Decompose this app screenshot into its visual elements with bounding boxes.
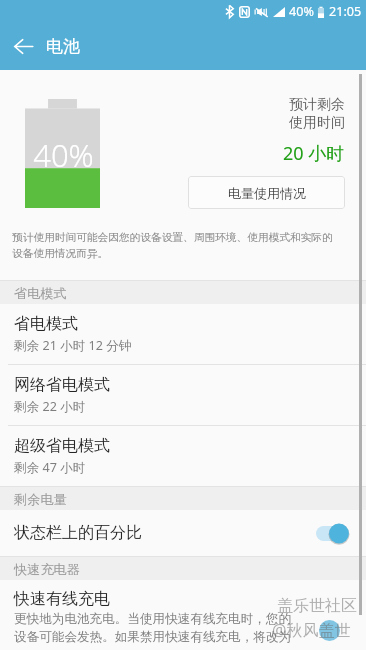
staticText: 剩余 22 小时	[14, 398, 86, 415]
button[interactable]: 超级省电模式	[0, 426, 366, 486]
staticText: 快速有线充电	[14, 589, 110, 609]
staticText: 快速充电器	[14, 561, 80, 578]
staticText: 超级省电模式	[14, 436, 110, 456]
staticText: 省电模式	[14, 285, 67, 302]
staticText: 网络省电模式	[14, 375, 110, 395]
staticText: 电量使用情况	[228, 185, 306, 201]
staticText: 剩余电量	[14, 491, 67, 508]
staticText: 电池	[46, 36, 80, 57]
staticText: 21:05	[329, 3, 362, 20]
button[interactable]: 省电模式	[0, 304, 366, 364]
staticText: 剩余 47 小时	[14, 459, 86, 476]
button[interactable]: 网络省电模式	[0, 365, 366, 425]
staticText: 盖乐世社区	[277, 596, 357, 616]
staticText: 剩余 21 小时 12 分钟	[14, 337, 132, 354]
staticText: 状态栏上的百分比	[14, 523, 142, 543]
staticText: @秋风盖世	[272, 619, 351, 641]
staticText: 更快地为电池充电。当使用快速有线充电时，您的 设备可能会发热。如果禁用快速有线充…	[14, 611, 292, 645]
staticText: 预计剩余	[289, 96, 345, 114]
staticText: 40%	[289, 3, 314, 20]
staticText: 省电模式	[14, 314, 78, 334]
button[interactable]: 电量使用情况	[188, 176, 345, 209]
staticText: 40%	[26, 134, 101, 176]
staticText: 20 小时	[283, 141, 345, 166]
button[interactable]: 快速有线充电	[0, 580, 366, 645]
staticText: 使用时间	[289, 114, 345, 132]
button[interactable]: Back	[0, 22, 46, 70]
staticText: 预计使用时间可能会因您的设备设置、周围环境、使用模式和实际的 设备使用情况而异。	[12, 231, 333, 260]
button[interactable]: 状态栏上的百分比	[0, 510, 366, 556]
